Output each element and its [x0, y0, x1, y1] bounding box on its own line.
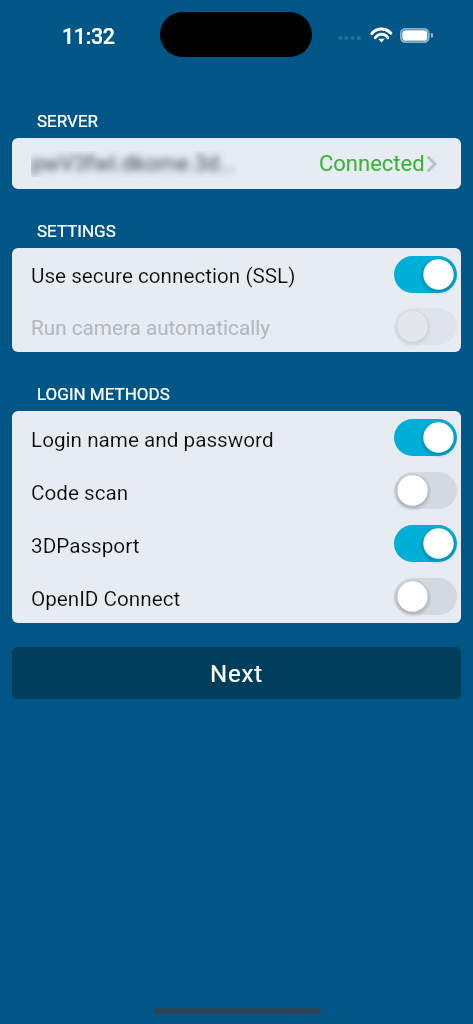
staticText: SETTINGS	[37, 221, 116, 241]
staticText: LOGIN METHODS	[37, 384, 170, 404]
button[interactable]: Code scan	[12, 464, 461, 517]
staticText: Code scan	[31, 481, 129, 505]
button[interactable]: Use secure connection (SSL)	[12, 248, 461, 300]
button[interactable]: 3DPassport	[12, 517, 461, 570]
staticText: 11:32	[62, 24, 115, 49]
staticText: Connected	[319, 151, 425, 177]
button[interactable]: OpenID Connect	[12, 570, 461, 623]
button[interactable]: Next	[12, 647, 461, 699]
button[interactable]: Switch off	[394, 578, 457, 615]
staticText: OpenID Connect	[31, 587, 181, 611]
staticText: SERVER	[37, 111, 99, 131]
button[interactable]: Switch on	[394, 525, 457, 562]
button[interactable]: Switch off	[394, 472, 457, 509]
staticText: Next	[210, 660, 263, 688]
button[interactable]: Switch on	[394, 256, 457, 293]
button[interactable]: Switch off	[394, 308, 457, 345]
button[interactable]: Switch on	[394, 419, 457, 456]
staticText: 3DPassport	[31, 534, 140, 558]
button[interactable]: Login name and password	[12, 411, 461, 464]
staticText: Run camera automatically	[31, 316, 271, 340]
other: Open server settings	[427, 153, 436, 175]
button[interactable]: pwV3fwl.dkome.3d...	[12, 138, 461, 189]
staticText: pwV3fwl.dkome.3d...	[31, 151, 237, 177]
button[interactable]: Run camera automatically	[12, 300, 461, 352]
staticText: Login name and password	[31, 428, 274, 452]
staticText: Use secure connection (SSL)	[31, 264, 296, 288]
